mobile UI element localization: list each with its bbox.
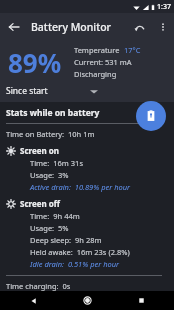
staticText: 17°C xyxy=(124,45,141,55)
staticText: Screen off xyxy=(20,198,60,209)
staticText: Active drain: 10.89% per hour xyxy=(30,182,131,192)
staticText: Since start xyxy=(6,85,48,97)
button[interactable]: Battery details xyxy=(136,101,166,131)
staticText: Battery Monitor xyxy=(31,20,112,34)
staticText: Usage: 5% xyxy=(30,223,69,233)
button[interactable]: Home xyxy=(67,291,107,310)
staticText: Idle drain: 0.51% per hour xyxy=(30,259,120,269)
staticText: Time: 16m 31s xyxy=(30,158,83,168)
staticText: 1:37 xyxy=(157,2,171,12)
staticText: Stats while on battery xyxy=(6,107,100,119)
staticText: Screen on xyxy=(20,145,59,156)
button[interactable]: Reset xyxy=(126,14,152,40)
staticText: Time on Battery: 10h 1m xyxy=(6,129,95,139)
staticText: Time: 9h 44m xyxy=(30,211,80,221)
staticText: Held awake: 16m 23s (2.8%) xyxy=(30,247,130,257)
staticText: Current: 531 mA xyxy=(74,57,132,67)
staticText: Discharging xyxy=(74,69,117,79)
staticText: Time charging: 0s xyxy=(6,281,71,291)
button[interactable]: More options xyxy=(152,16,174,38)
staticText: Usage: 3% xyxy=(30,170,69,180)
button[interactable]: Back xyxy=(14,291,54,310)
staticText: 89% xyxy=(8,45,62,80)
button[interactable]: Back xyxy=(0,13,28,41)
staticText: Deep sleep: 9h 28m xyxy=(30,235,102,245)
staticText: Temperature xyxy=(74,45,120,55)
button[interactable]: Since start xyxy=(6,85,98,97)
button[interactable]: Recent apps xyxy=(121,291,161,310)
